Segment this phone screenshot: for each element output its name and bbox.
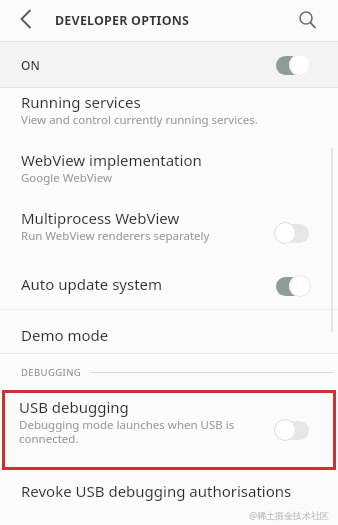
button[interactable]: ON (0, 42, 338, 87)
button[interactable]: Multiprocess WebView (0, 204, 338, 262)
staticText: Run WebView renderers separately (21, 228, 210, 244)
staticText: DEBUGGING (21, 366, 82, 379)
staticText: ON (21, 57, 40, 73)
staticText: Google WebView (21, 170, 112, 186)
button[interactable]: Running services (0, 88, 338, 146)
staticText: Debugging mode launches when USB is conn… (19, 417, 235, 446)
staticText: Demo mode (21, 325, 109, 345)
staticText: Auto update system (21, 274, 163, 294)
button[interactable]: Auto update system (0, 262, 338, 309)
button[interactable]: WebView implementation (0, 146, 338, 204)
staticText: USB debugging (19, 397, 129, 417)
staticText: WebView implementation (21, 150, 202, 170)
staticText: @稀土掘金技术社区 (249, 509, 330, 521)
staticText: DEVELOPER OPTIONS (55, 12, 190, 29)
button[interactable]: Demo mode (0, 310, 338, 353)
staticText: Multiprocess WebView (21, 208, 180, 228)
staticText: Revoke USB debugging authorisations (21, 481, 292, 501)
button[interactable]: Revoke USB debugging authorisations (0, 470, 338, 512)
button[interactable] (291, 4, 325, 38)
button[interactable]: USB debugging (2, 390, 336, 470)
staticText: View and control currently running servi… (21, 112, 258, 128)
staticText: Running services (21, 92, 141, 112)
button[interactable] (12, 9, 36, 33)
